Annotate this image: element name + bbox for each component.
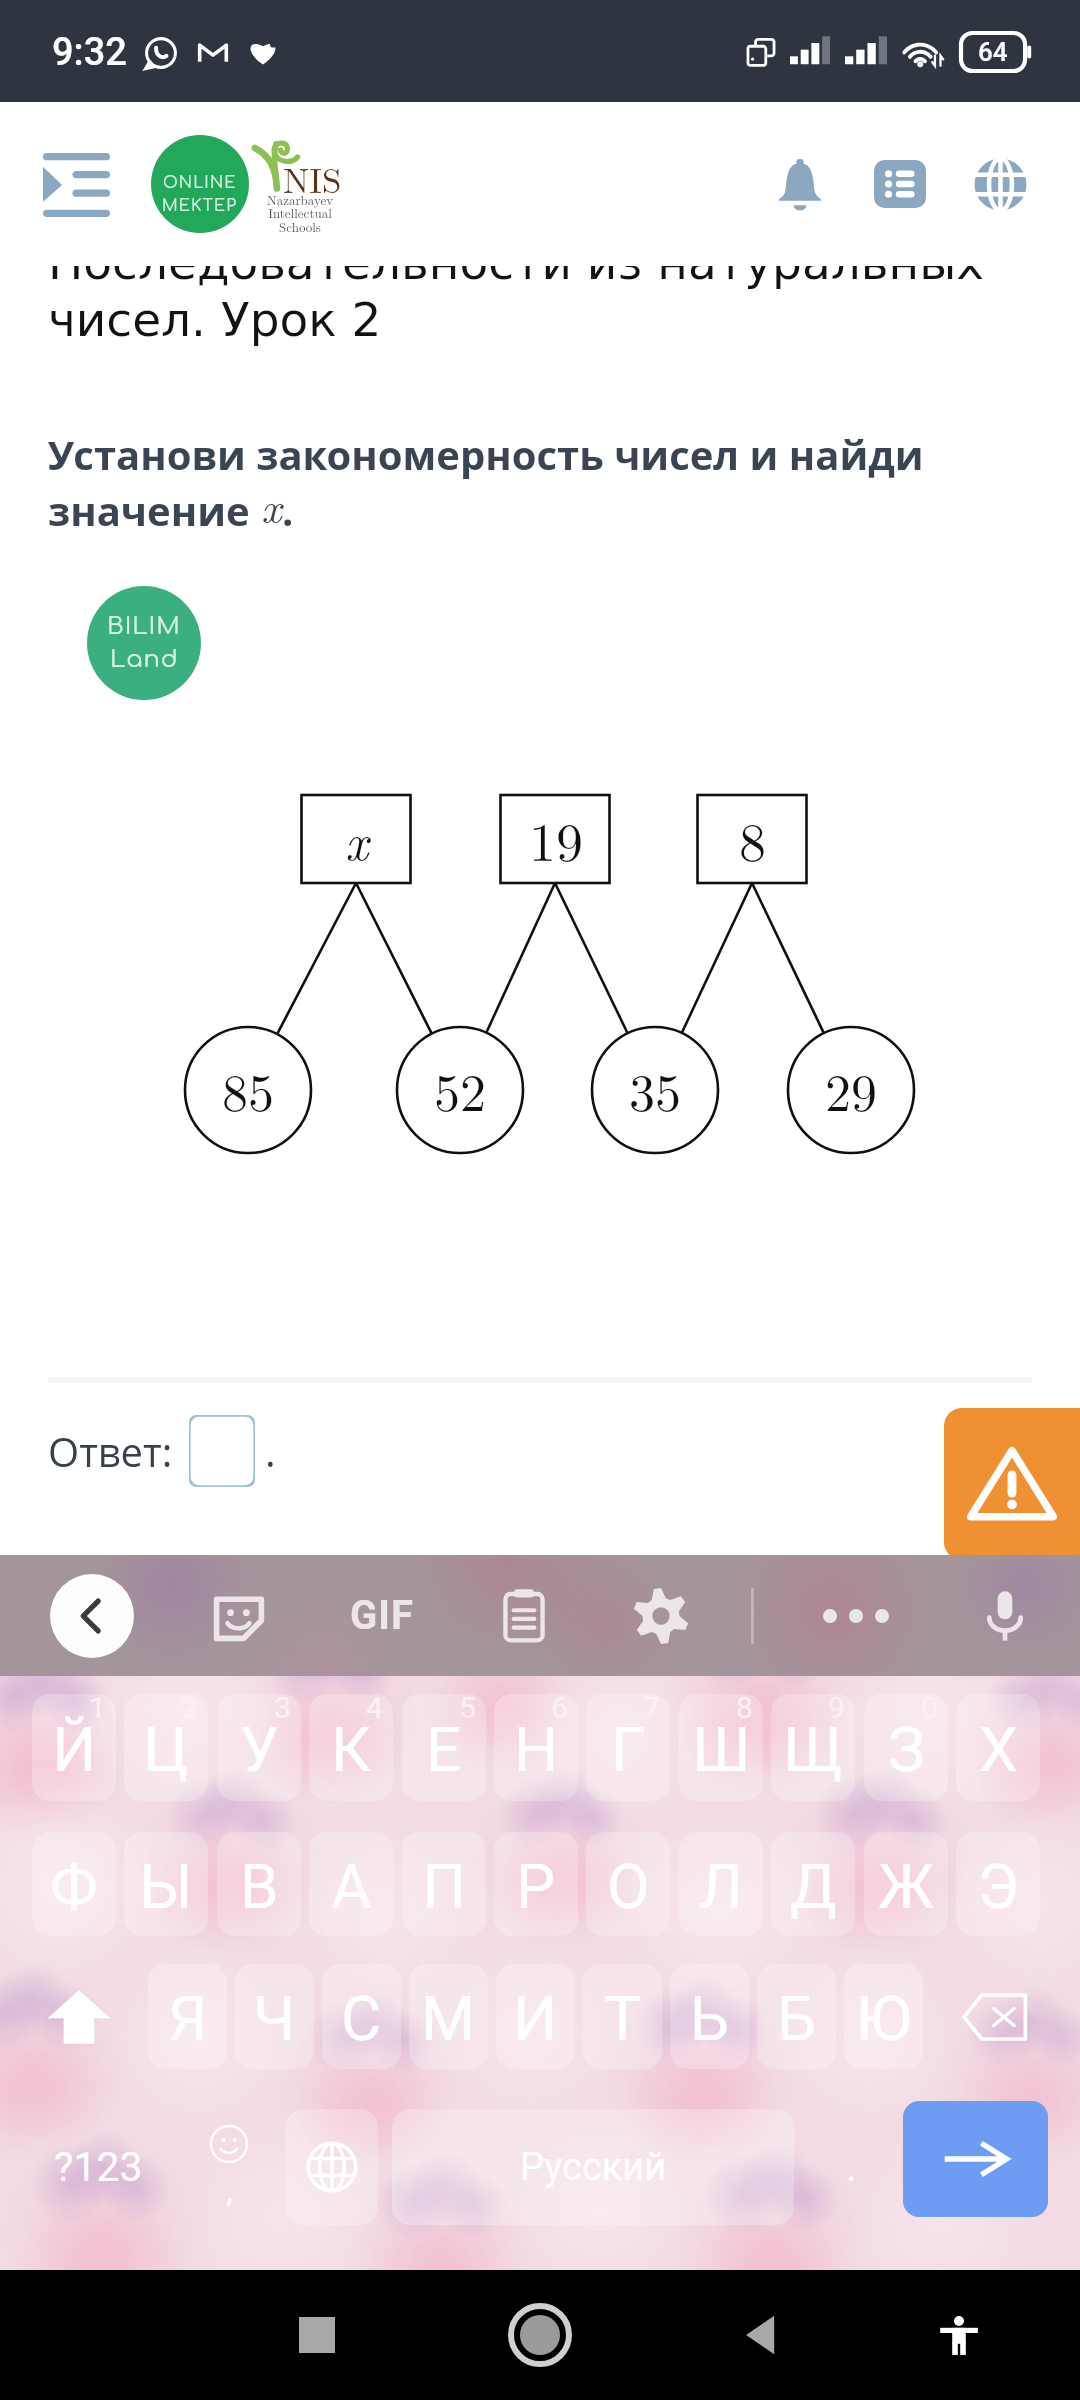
button[interactable]: Ш	[679, 1694, 763, 1801]
staticText: Установи закономерность чисел и найди	[48, 427, 924, 481]
button[interactable]: Emoji	[176, 2101, 282, 2233]
staticText: 8	[736, 1694, 753, 1725]
button[interactable]: П	[402, 1832, 486, 1936]
button[interactable]: Settings	[628, 1583, 694, 1649]
staticText: .	[282, 483, 294, 537]
button[interactable]: Menu	[33, 143, 120, 227]
staticText: З	[888, 1713, 925, 1786]
button[interactable]: З	[864, 1694, 948, 1801]
staticText: .	[265, 1424, 276, 1478]
staticText: С	[341, 1982, 382, 2055]
button[interactable]: А	[309, 1832, 393, 1936]
button[interactable]: Б	[757, 1964, 836, 2069]
staticText: Ю	[856, 1982, 912, 2055]
button[interactable]: Report a problem	[944, 1408, 1080, 1560]
button[interactable]: Notifications	[754, 138, 846, 230]
button[interactable]: Enter	[903, 2101, 1048, 2217]
staticText: Русский	[520, 2145, 667, 2190]
staticText: BILIM	[107, 613, 181, 640]
button[interactable]: В	[217, 1832, 301, 1936]
staticText: Ь	[690, 1982, 729, 2055]
button[interactable]: Answer field	[189, 1415, 255, 1487]
staticText: А	[331, 1850, 372, 1923]
button[interactable]: Voice input	[972, 1583, 1038, 1649]
button[interactable]: Русский	[392, 2109, 794, 2225]
button[interactable]: Х	[956, 1694, 1040, 1801]
staticText: 9:32	[52, 30, 127, 75]
button[interactable]: Accessibility	[904, 2280, 1014, 2390]
button[interactable]: Tasks list	[854, 138, 946, 230]
button[interactable]: Е	[402, 1694, 486, 1801]
staticText: 8	[739, 800, 766, 877]
button[interactable]: Щ	[771, 1694, 855, 1801]
button[interactable]: Recents	[262, 2280, 372, 2390]
staticText: Э	[977, 1850, 1019, 1923]
button[interactable]: Ы	[124, 1832, 208, 1936]
button[interactable]: Т	[583, 1964, 662, 2069]
button[interactable]: Г	[586, 1694, 670, 1801]
button[interactable]: Л	[679, 1832, 763, 1936]
staticText: Nazarbayev Intellectual Schools	[258, 190, 342, 236]
staticText: 85	[222, 1052, 275, 1126]
button[interactable]: Backspace	[946, 1964, 1044, 2069]
staticText: У	[240, 1713, 279, 1786]
staticText: 6	[551, 1694, 568, 1725]
staticText: чисел. Урок 2	[48, 292, 382, 347]
button[interactable]: Change language	[286, 2109, 378, 2225]
button[interactable]: Back	[706, 2280, 816, 2390]
staticText: Я	[168, 1982, 208, 2055]
button[interactable]: Ю	[844, 1964, 923, 2069]
staticText: x	[261, 473, 282, 535]
staticText: Н	[514, 1713, 559, 1786]
button[interactable]: ?123	[32, 2101, 164, 2233]
staticText: GIF	[350, 1592, 414, 1639]
staticText: Л	[699, 1850, 743, 1923]
button[interactable]: Ч	[235, 1964, 314, 2069]
staticText: 4	[366, 1694, 383, 1725]
staticText: В	[240, 1850, 279, 1923]
button[interactable]: Ц	[124, 1694, 208, 1801]
staticText: ONLINE	[163, 174, 237, 192]
button[interactable]: Д	[771, 1832, 855, 1936]
button[interactable]: Р	[494, 1832, 578, 1936]
staticText: Щ	[783, 1713, 844, 1786]
staticText: Ш	[692, 1713, 751, 1786]
button[interactable]: Ж	[864, 1832, 948, 1936]
button[interactable]: Ф	[32, 1832, 116, 1936]
button[interactable]: Н	[494, 1694, 578, 1801]
staticText: Последовательности из натуральных	[48, 235, 985, 290]
staticText: Ч	[253, 1982, 296, 2055]
staticText: 9	[828, 1694, 845, 1725]
button[interactable]: К	[309, 1694, 393, 1801]
staticText: Е	[426, 1713, 462, 1786]
button[interactable]: Clipboard	[491, 1583, 557, 1649]
button[interactable]: Shift	[32, 1964, 125, 2069]
button[interactable]: М	[409, 1964, 488, 2069]
button[interactable]: Й	[32, 1694, 116, 1801]
staticText: ,	[226, 2170, 233, 2210]
staticText: Ы	[139, 1850, 193, 1923]
button[interactable]: О	[586, 1832, 670, 1936]
button[interactable]: More options	[811, 1587, 901, 1645]
staticText: x	[345, 804, 369, 875]
button[interactable]: Stickers	[206, 1583, 272, 1649]
button[interactable]: Ь	[670, 1964, 749, 2069]
staticText: Р	[516, 1850, 556, 1923]
staticText: Ц	[143, 1713, 189, 1786]
button[interactable]: Back	[50, 1574, 134, 1658]
button[interactable]: Home	[485, 2280, 595, 2390]
button[interactable]: С	[322, 1964, 401, 2069]
button[interactable]: У	[217, 1694, 301, 1801]
button[interactable]: Э	[956, 1832, 1040, 1936]
button[interactable]: GIF	[344, 1582, 420, 1649]
staticText: И	[513, 1982, 558, 2055]
staticText: М	[421, 1982, 476, 2055]
staticText: .	[846, 2144, 857, 2191]
button[interactable]: .	[806, 2101, 896, 2233]
button[interactable]: Я	[148, 1964, 227, 2069]
button[interactable]: Language	[954, 138, 1046, 230]
staticText: ?123	[54, 2143, 143, 2191]
button[interactable]: И	[496, 1964, 575, 2069]
